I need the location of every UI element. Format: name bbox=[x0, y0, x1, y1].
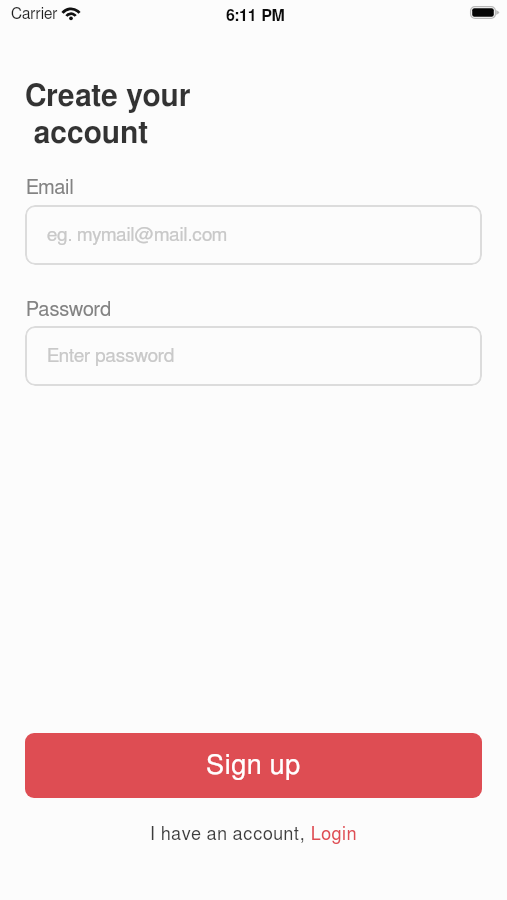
button[interactable]: I have an account, Login bbox=[144, 824, 364, 846]
staticText: Enter password bbox=[47, 347, 175, 366]
staticText: 6:11 PM bbox=[226, 8, 286, 24]
other: Battery full bbox=[470, 6, 500, 19]
staticText: Email bbox=[26, 178, 74, 198]
staticText: Create your account bbox=[25, 82, 191, 149]
other: Wi-Fi signal bbox=[60, 6, 82, 20]
button[interactable]: Enter password bbox=[25, 326, 482, 386]
staticText: eg. mymail@mail.com bbox=[47, 226, 228, 245]
staticText: Password bbox=[26, 300, 112, 320]
staticText: Sign up bbox=[206, 752, 301, 779]
staticText: Carrier bbox=[11, 7, 58, 23]
button[interactable]: eg. mymail@mail.com bbox=[25, 205, 482, 265]
staticText: I have an account, Login bbox=[150, 826, 358, 844]
button[interactable]: Sign up bbox=[25, 733, 482, 798]
